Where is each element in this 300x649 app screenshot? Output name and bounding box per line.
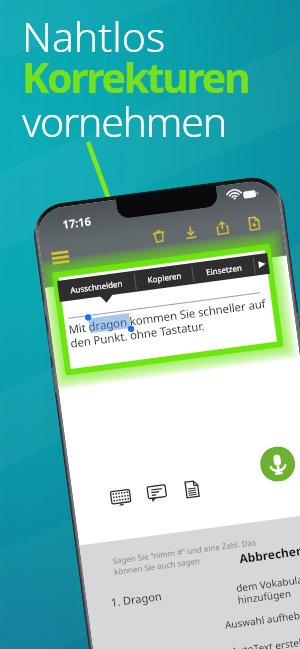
staticText: Auswahl aufheben: [224, 606, 300, 632]
staticText: Einsetzen: [205, 262, 242, 277]
staticText: Nahtlos: [22, 8, 166, 64]
button[interactable]: Delete: [151, 228, 167, 244]
staticText: Kopieren: [147, 270, 182, 285]
button[interactable]: Kopieren: [134, 263, 194, 292]
staticText: dem Vokabular hinzufügen: [235, 572, 300, 607]
button[interactable]: Keyboard: [110, 489, 131, 507]
staticText: Ausschneiden: [70, 277, 124, 295]
staticText: Sagen Sie “nimm #” und eine Zahl. Das kö…: [112, 536, 258, 577]
button[interactable]: Menu: [51, 250, 70, 264]
staticText: vornehmen: [22, 93, 226, 149]
staticText: Abbrechen: [238, 542, 300, 566]
button[interactable]: Ausschneiden: [57, 271, 136, 302]
button[interactable]: Dictate: [258, 444, 297, 484]
button[interactable]: Einsetzen: [192, 255, 255, 284]
staticText: Korrekturen: [22, 49, 249, 105]
staticText: AutoText erstellen: [231, 633, 300, 649]
staticText: Mit dragon kommen Sie schneller auf den …: [67, 296, 269, 351]
button[interactable]: Document: [183, 478, 202, 499]
button[interactable]: More options: [253, 253, 270, 276]
staticText: 17:16: [62, 213, 92, 232]
button[interactable]: Messages: [147, 485, 167, 503]
staticText: 1. Dragon: [110, 588, 162, 610]
button[interactable]: New document: [246, 216, 262, 231]
button[interactable]: Share: [215, 220, 230, 236]
button[interactable]: Download: [183, 224, 198, 240]
